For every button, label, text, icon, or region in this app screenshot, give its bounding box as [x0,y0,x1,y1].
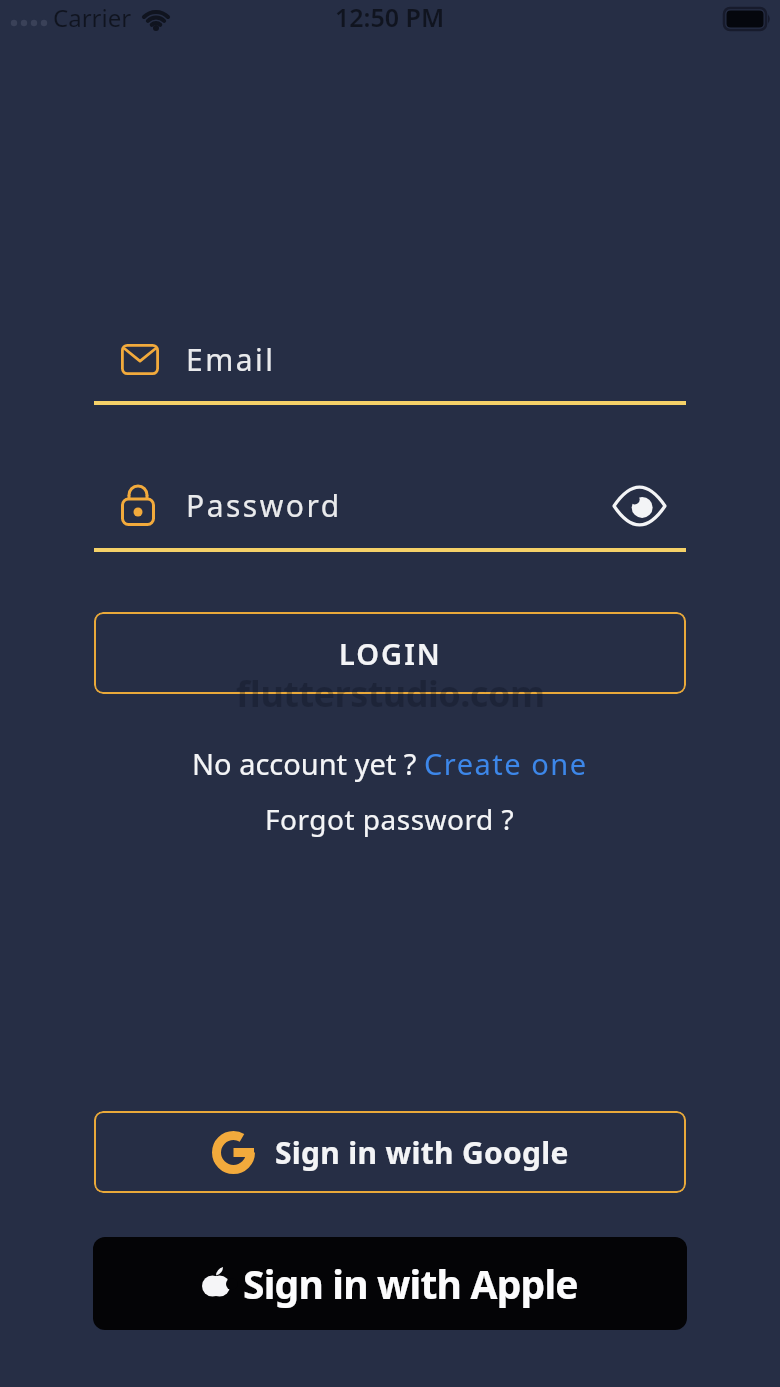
staticText: Password [186,485,342,526]
button[interactable] [613,488,666,524]
button[interactable]: Forgot password ? [265,800,515,838]
staticText: Sign in with Apple [243,1257,578,1310]
staticText: No account yet ? [192,744,424,782]
button[interactable]: Create one [424,744,588,782]
button[interactable]: Sign in with Google [94,1111,686,1193]
button[interactable]: LOGIN [94,612,686,694]
staticText: Carrier [53,1,132,34]
staticText: flutterstudio.com [236,669,545,718]
staticText: Email [186,339,276,380]
staticText: Sign in with Google [275,1132,569,1173]
staticText: LOGIN [339,634,442,673]
staticText: 12:50 PM [335,0,445,34]
button[interactable]: Sign in with Apple [93,1237,687,1330]
